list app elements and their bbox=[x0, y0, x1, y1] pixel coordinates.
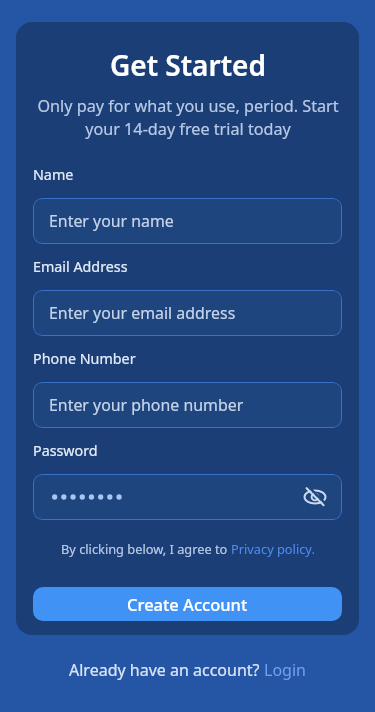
staticText: Enter your email address bbox=[49, 302, 236, 324]
staticText: Enter your name bbox=[49, 210, 174, 232]
staticText: Password bbox=[33, 441, 98, 460]
staticText: Already have an account? bbox=[69, 659, 264, 681]
staticText: Name bbox=[33, 165, 74, 184]
staticText: Login bbox=[264, 659, 306, 681]
staticText: Privacy policy. bbox=[231, 540, 315, 557]
staticText: By clicking below, I agree to bbox=[61, 540, 231, 557]
staticText: Phone Number bbox=[33, 349, 136, 368]
staticText: Only pay for what you use, period. Start… bbox=[37, 95, 339, 140]
staticText: Get Started bbox=[110, 46, 266, 84]
staticText: Enter your phone number bbox=[49, 394, 244, 416]
staticText: Create Account bbox=[127, 593, 248, 615]
staticText: Email Address bbox=[33, 257, 128, 276]
